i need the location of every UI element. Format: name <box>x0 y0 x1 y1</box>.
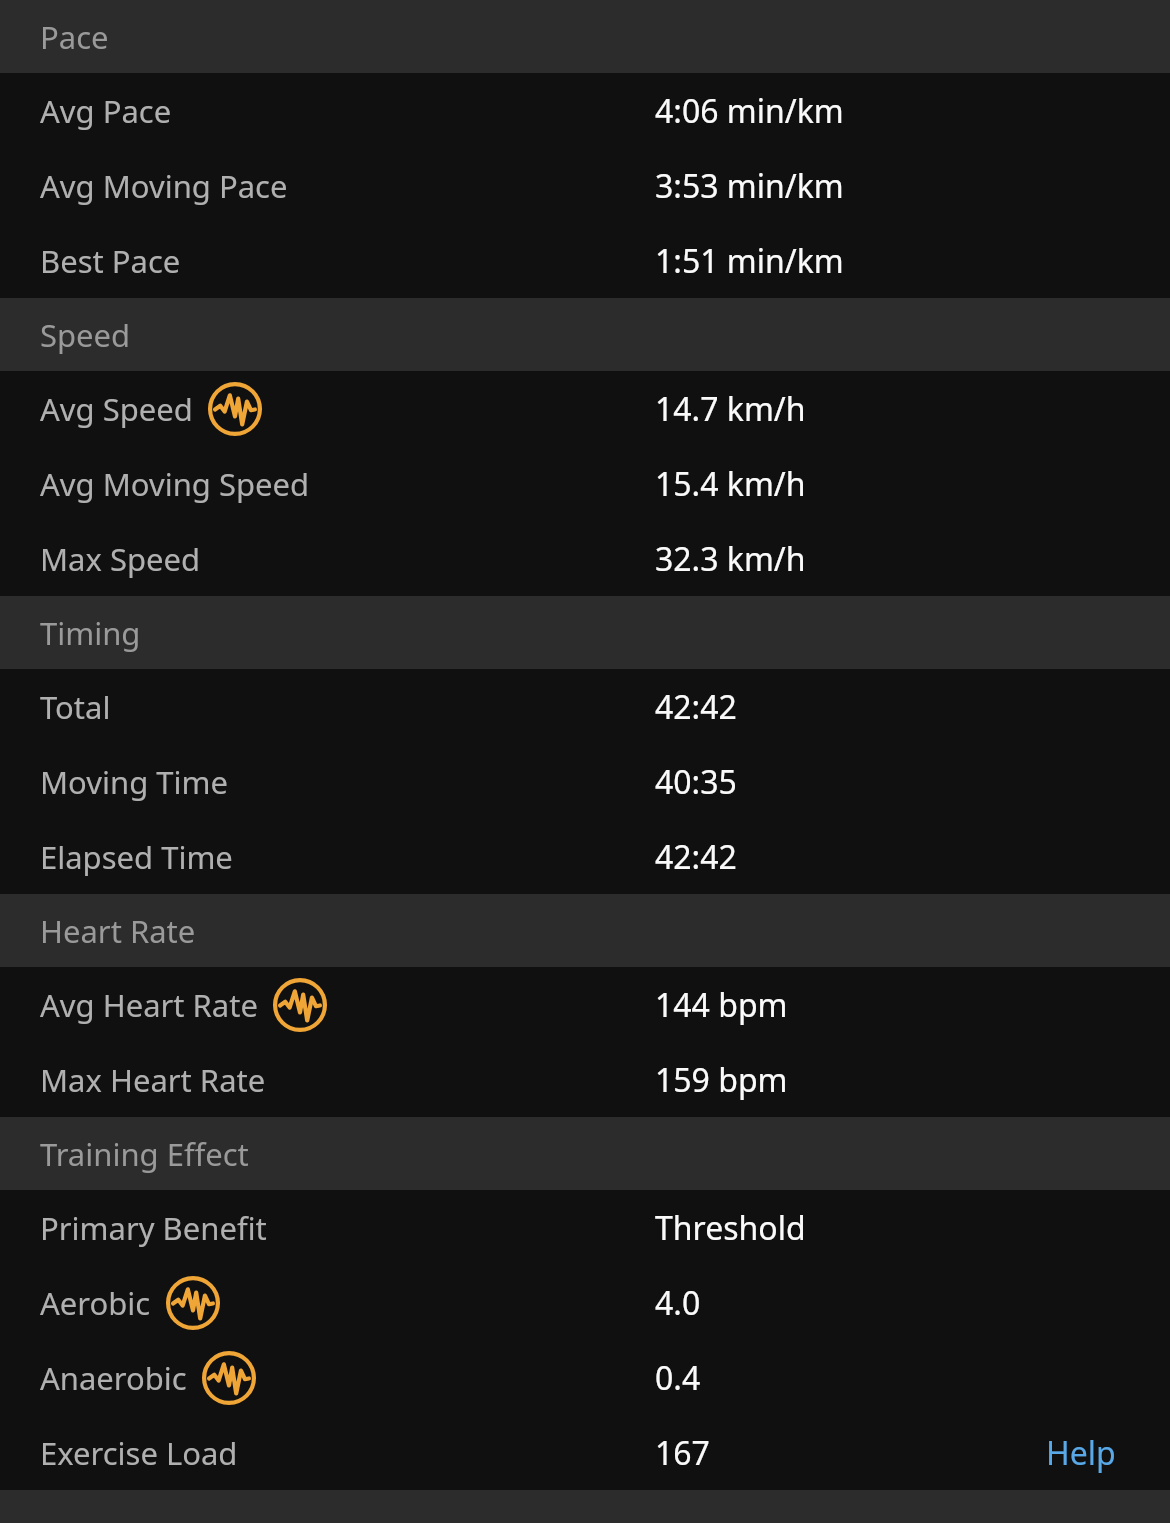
button[interactable]: Avg Speed <box>0 371 1170 446</box>
staticText: Best Pace <box>40 240 181 282</box>
other: Heart rate based metric <box>272 977 328 1033</box>
button[interactable]: Help <box>1040 1423 1122 1483</box>
other: Heart rate based metric <box>165 1275 221 1331</box>
other: Heart rate based metric <box>207 381 263 437</box>
staticText: Primary Benefit <box>40 1207 267 1249</box>
button[interactable]: Avg Heart Rate <box>0 967 1170 1042</box>
staticText: 15.4 km/h <box>655 462 806 506</box>
staticText: Exercise Load <box>40 1432 238 1474</box>
button[interactable]: Exercise Load <box>0 1415 1170 1490</box>
staticText: Anaerobic <box>40 1357 187 1399</box>
staticText: 1:51 min/km <box>655 239 844 283</box>
staticText: Moving Time <box>40 761 228 803</box>
button[interactable]: Max Speed <box>0 521 1170 596</box>
button[interactable]: Total <box>0 669 1170 744</box>
staticText: 42:42 <box>655 685 737 729</box>
staticText: Max Heart Rate <box>40 1059 266 1101</box>
button[interactable]: Avg Pace <box>0 73 1170 148</box>
button[interactable]: Max Heart Rate <box>0 1042 1170 1117</box>
staticText: 0.4 <box>655 1356 701 1400</box>
staticText: 159 bpm <box>655 1058 788 1102</box>
staticText: 4.0 <box>655 1281 701 1325</box>
staticText: Avg Moving Pace <box>40 165 288 207</box>
staticText: Speed <box>40 314 131 356</box>
staticText: Avg Moving Speed <box>40 463 310 505</box>
staticText: 3:53 min/km <box>655 164 844 208</box>
staticText: 40:35 <box>655 760 737 804</box>
button[interactable]: Avg Moving Speed <box>0 446 1170 521</box>
button[interactable]: Avg Moving Pace <box>0 148 1170 223</box>
staticText: Timing <box>40 612 141 654</box>
button[interactable]: Primary Benefit <box>0 1190 1170 1265</box>
staticText: Threshold <box>655 1206 806 1250</box>
staticText: 167 <box>655 1431 710 1475</box>
staticText: Heart Rate <box>40 910 196 952</box>
staticText: Training Effect <box>40 1133 249 1175</box>
staticText: 14.7 km/h <box>655 387 806 431</box>
staticText: Pace <box>40 16 109 58</box>
button[interactable]: Best Pace <box>0 223 1170 298</box>
staticText: Avg Speed <box>40 388 193 430</box>
staticText: Avg Pace <box>40 90 172 132</box>
button[interactable]: Moving Time <box>0 744 1170 819</box>
button[interactable]: Anaerobic <box>0 1340 1170 1415</box>
button[interactable]: Aerobic <box>0 1265 1170 1340</box>
staticText: Aerobic <box>40 1282 151 1324</box>
staticText: Elapsed Time <box>40 836 233 878</box>
staticText: Max Speed <box>40 538 201 580</box>
staticText: Total <box>40 686 111 728</box>
staticText: 144 bpm <box>655 983 788 1027</box>
staticText: 42:42 <box>655 835 737 879</box>
staticText: 4:06 min/km <box>655 89 844 133</box>
staticText: Help <box>1046 1431 1116 1475</box>
staticText: Avg Heart Rate <box>40 984 258 1026</box>
other: Heart rate based metric <box>201 1350 257 1406</box>
staticText: 32.3 km/h <box>655 537 806 581</box>
button[interactable]: Elapsed Time <box>0 819 1170 894</box>
